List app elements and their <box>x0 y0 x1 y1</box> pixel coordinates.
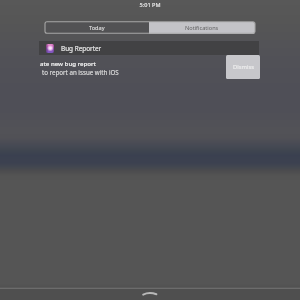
staticText: Dismiss <box>233 63 254 71</box>
button[interactable]: Dismiss <box>226 55 260 79</box>
staticText: ate new bug report <box>40 59 96 67</box>
button[interactable]: Today <box>45 22 149 34</box>
staticText: Bug Reporter <box>61 44 102 53</box>
staticText: Today <box>89 24 105 32</box>
other: Home <box>0 0 300 300</box>
staticText: to report an issue with iOS <box>42 68 119 76</box>
staticText: 5:01 PM <box>0 1 300 9</box>
button[interactable]: Bug Reporter <box>39 41 259 55</box>
staticText: Notifications <box>185 24 219 32</box>
button[interactable]: Notifications <box>149 22 255 34</box>
